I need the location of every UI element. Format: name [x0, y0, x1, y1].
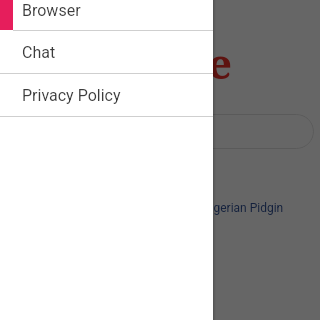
- staticText: Chat: [22, 43, 56, 62]
- staticText: Browser: [22, 1, 81, 20]
- staticText: Translate: [29, 34, 232, 91]
- staticText: Privacy Policy: [22, 86, 121, 105]
- button[interactable]: Browser: [0, 0, 213, 31]
- button[interactable]: Close navigation drawer: [0, 0, 320, 320]
- button[interactable]: Privacy Policy: [0, 74, 213, 117]
- button[interactable]: [36, 114, 314, 149]
- button[interactable]: Chat: [0, 31, 213, 74]
- staticText: Nigerian Pidgin: [202, 201, 284, 215]
